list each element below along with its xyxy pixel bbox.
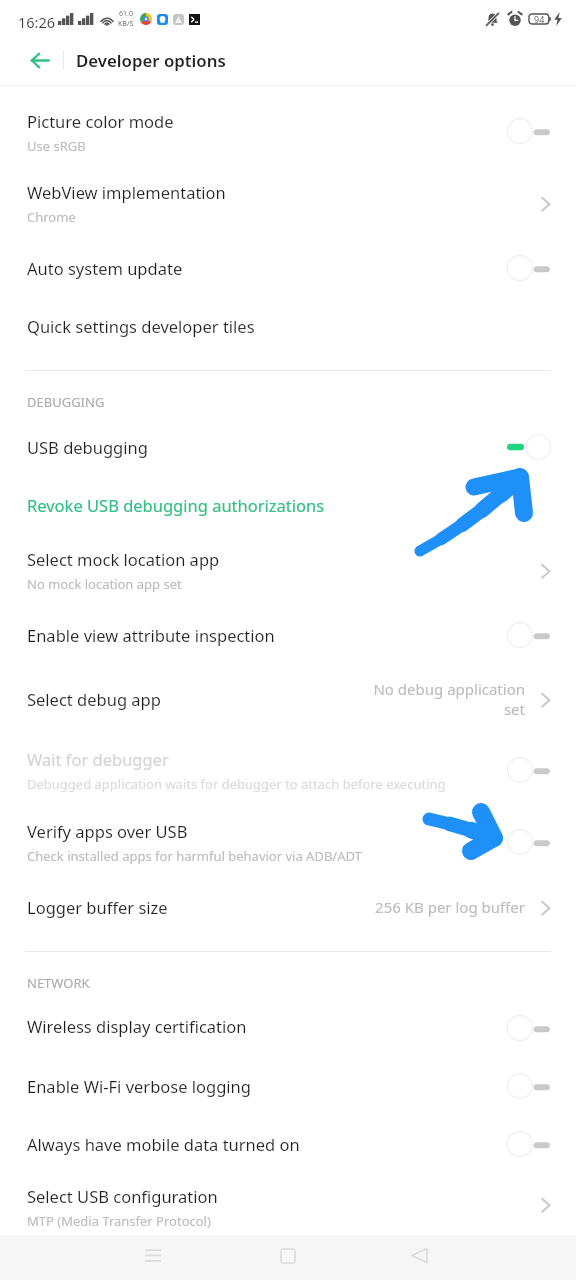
button[interactable]: Select USB configuration	[0, 1173, 576, 1235]
button[interactable]: Home	[258, 1233, 318, 1278]
staticText: KB/S	[118, 19, 134, 29]
staticText: No mock location app set	[27, 575, 182, 593]
staticText: Developer options	[76, 49, 226, 72]
button[interactable]: Toggle	[510, 430, 558, 464]
button[interactable]: Verify apps over USB	[0, 806, 576, 878]
staticText: 94	[534, 13, 545, 25]
staticText: Wireless display certification	[27, 1015, 247, 1037]
staticText: Auto system update	[27, 257, 183, 279]
staticText: MTP (Media Transfer Protocol)	[27, 1212, 211, 1230]
staticText: No debug application set	[366, 679, 525, 719]
staticText: Debugged application waits for debugger …	[27, 775, 446, 793]
staticText: Select mock location app	[27, 548, 220, 570]
staticText: Enable Wi-Fi verbose logging	[27, 1075, 251, 1097]
button[interactable]: Toggle	[510, 825, 558, 859]
button[interactable]: Picture color mode	[0, 95, 576, 167]
button[interactable]: Back	[19, 40, 60, 81]
staticText: Quick settings developer tiles	[27, 315, 255, 337]
staticText: Select debug app	[27, 688, 161, 710]
button[interactable]: Toggle	[510, 753, 558, 787]
button[interactable]: USB debugging	[0, 418, 576, 476]
button[interactable]: Recent apps	[123, 1233, 183, 1278]
button[interactable]: Enable Wi-Fi verbose logging	[0, 1057, 576, 1115]
button[interactable]: Toggle	[510, 1011, 558, 1045]
button[interactable]: Revoke USB debugging authorizations	[0, 476, 576, 534]
staticText: 16:26	[18, 12, 56, 32]
staticText: WebView implementation	[27, 181, 226, 203]
staticText: Select USB configuration	[27, 1185, 218, 1207]
button[interactable]: Wireless display certification	[0, 999, 576, 1057]
button[interactable]: Back	[389, 1233, 449, 1278]
button[interactable]: Toggle	[510, 251, 558, 285]
staticText: Picture color mode	[27, 110, 174, 132]
button[interactable]: Select debug app	[0, 664, 576, 734]
button[interactable]: Quick settings developer tiles	[0, 297, 576, 355]
button[interactable]: Toggle	[510, 114, 558, 148]
staticText: NETWORK	[27, 974, 90, 992]
staticText: 61.0	[119, 9, 133, 19]
button[interactable]: Auto system update	[0, 239, 576, 297]
staticText: USB debugging	[27, 436, 148, 458]
staticText: Check installed apps for harmful behavio…	[27, 847, 362, 865]
button[interactable]: Logger buffer size	[0, 878, 576, 936]
staticText: Verify apps over USB	[27, 820, 188, 842]
staticText: Logger buffer size	[27, 896, 168, 918]
button[interactable]: Enable view attribute inspection	[0, 606, 576, 664]
staticText: 256 KB per log buffer	[366, 897, 525, 917]
button[interactable]: Toggle	[510, 1127, 558, 1161]
staticText: Revoke USB debugging authorizations	[27, 494, 325, 516]
button[interactable]: Always have mobile data turned on	[0, 1115, 576, 1173]
staticText: Enable view attribute inspection	[27, 624, 275, 646]
staticText: Chrome	[27, 208, 76, 226]
staticText: Use sRGB	[27, 137, 86, 155]
staticText: Always have mobile data turned on	[27, 1133, 300, 1155]
button[interactable]: Select mock location app	[0, 534, 576, 606]
button[interactable]: WebView implementation	[0, 167, 576, 239]
button[interactable]: Toggle	[510, 618, 558, 652]
staticText: Wait for debugger	[27, 748, 169, 770]
button[interactable]: Toggle	[510, 1069, 558, 1103]
staticText: DEBUGGING	[27, 393, 105, 411]
button[interactable]: Wait for debugger	[0, 734, 576, 806]
